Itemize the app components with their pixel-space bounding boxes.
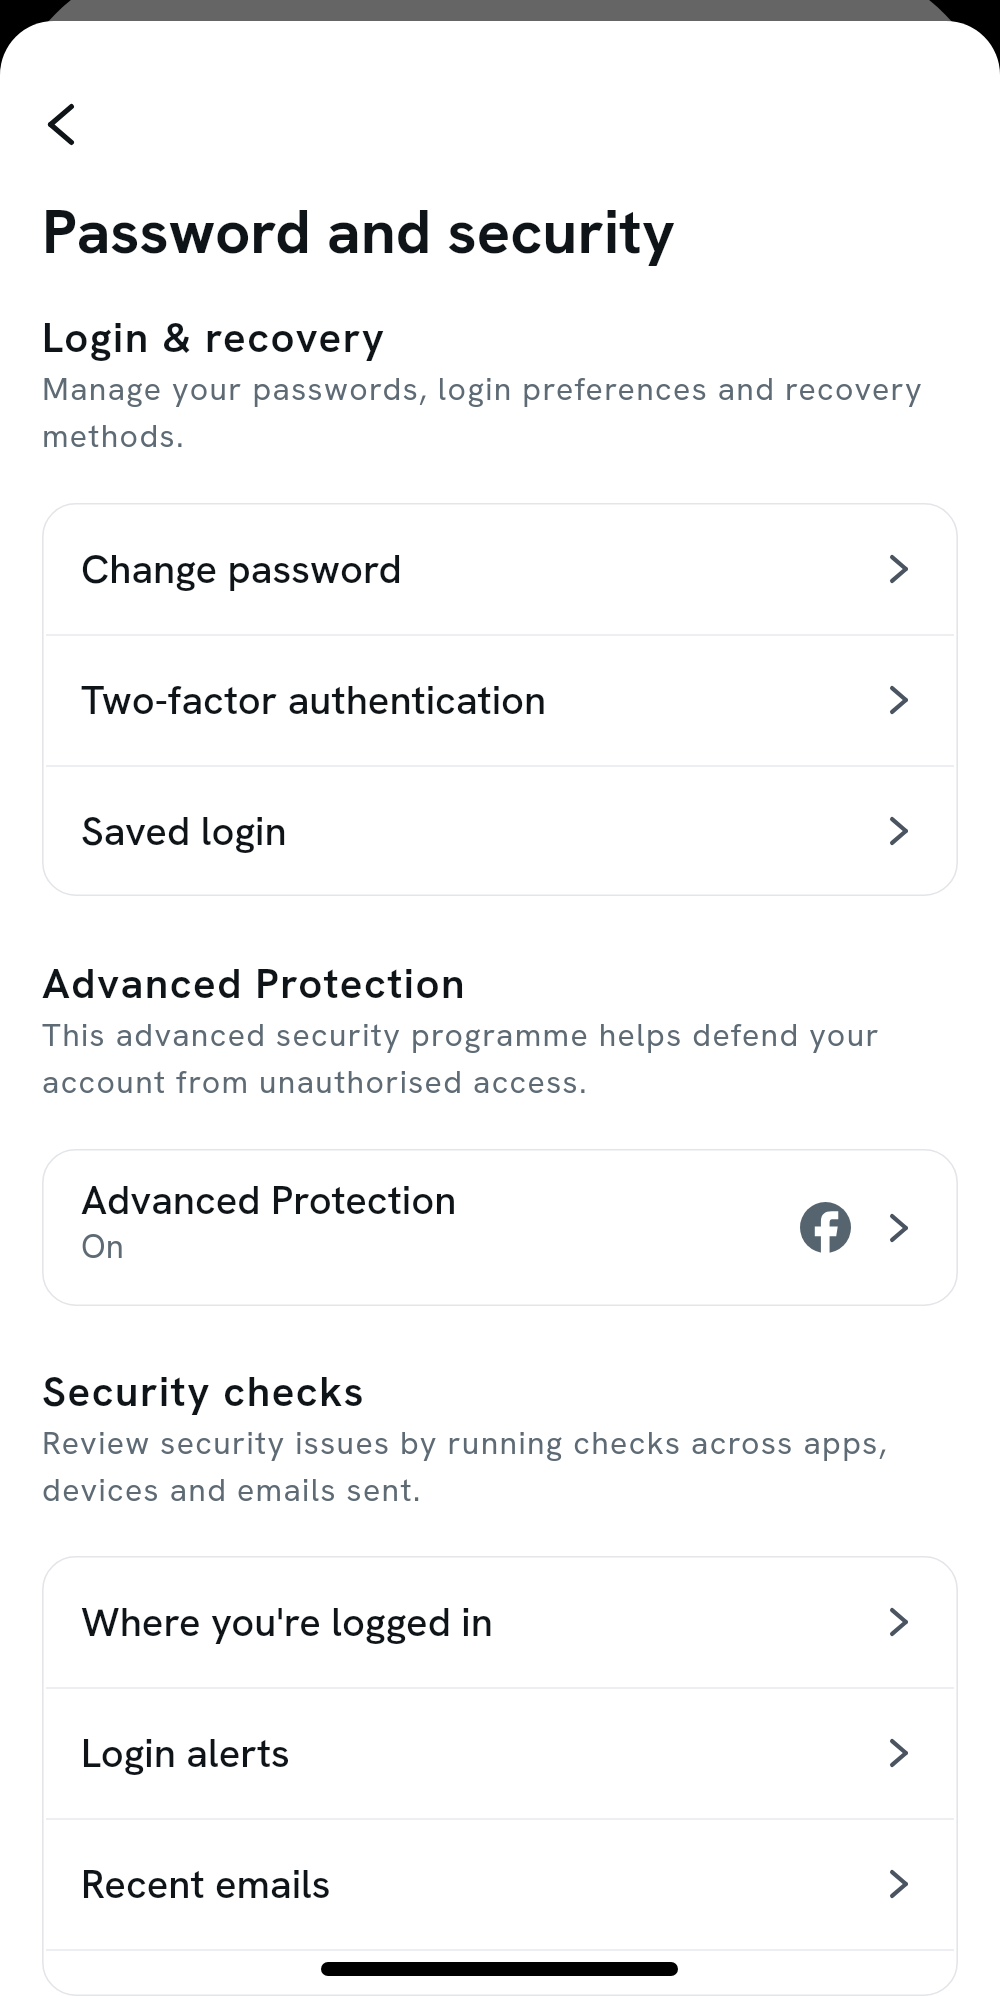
other: Open: [890, 555, 908, 583]
staticText: Saved login: [81, 805, 287, 857]
staticText: Change password: [81, 543, 402, 595]
other: Open: [890, 817, 908, 845]
staticText: Where you're logged in: [81, 1596, 493, 1648]
staticText: Recent emails: [81, 1858, 331, 1910]
button[interactable]: Recent emails: [42, 1818, 958, 1949]
staticText: Login alerts: [81, 1727, 290, 1779]
staticText: Advanced Protection: [81, 1174, 457, 1226]
other: Open: [890, 1608, 908, 1636]
button[interactable]: Back: [27, 90, 95, 158]
button[interactable]: Where you're logged in: [42, 1556, 958, 1687]
staticText: Security checks: [42, 1364, 366, 1419]
staticText: Advanced Protection: [42, 956, 466, 1011]
other: Open: [890, 1739, 908, 1767]
other: Facebook: [800, 1202, 851, 1253]
staticText: Manage your passwords, login preferences…: [42, 368, 923, 457]
button[interactable]: Saved login: [42, 765, 958, 896]
button[interactable]: Login alerts: [42, 1687, 958, 1818]
staticText: This advanced security programme helps d…: [42, 1014, 880, 1103]
button[interactable]: Change password: [42, 503, 958, 634]
staticText: Review security issues by running checks…: [42, 1422, 888, 1511]
other: Open: [890, 1870, 908, 1898]
staticText: Password and security: [42, 191, 676, 272]
other: Open: [890, 686, 908, 714]
staticText: Login & recovery: [42, 310, 386, 365]
staticText: Two-factor authentication: [81, 674, 547, 726]
button[interactable]: Advanced Protection: [42, 1149, 958, 1306]
staticText: On: [81, 1225, 124, 1268]
button[interactable]: Two-factor authentication: [42, 634, 958, 765]
other: Open: [890, 1214, 908, 1242]
